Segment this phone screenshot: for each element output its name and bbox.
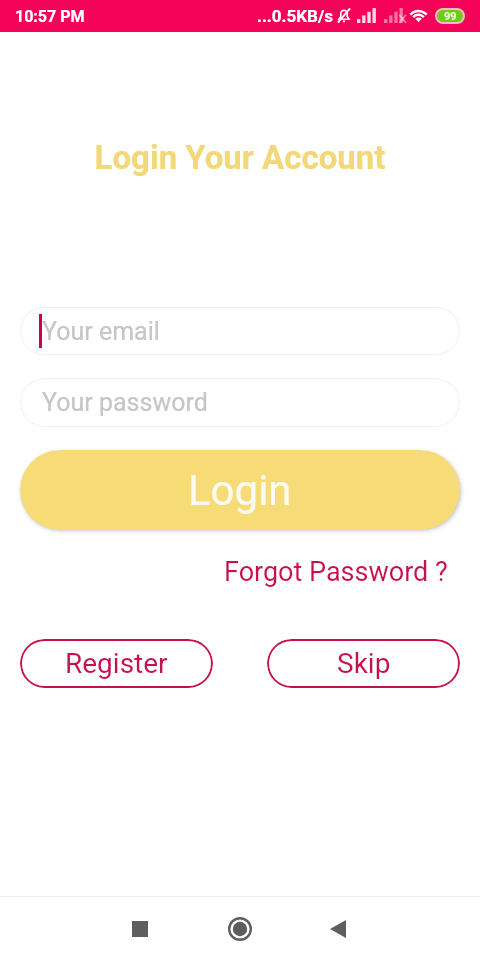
button[interactable]: Your email [20, 307, 460, 355]
staticText: Your email [42, 317, 160, 346]
staticText: Login [188, 466, 292, 515]
button[interactable]: Skip [267, 639, 460, 688]
staticText: 10:57 PM [15, 7, 85, 26]
button[interactable]: Login [20, 450, 460, 530]
staticText: Skip [337, 647, 391, 680]
staticText: Your password [42, 388, 208, 417]
button[interactable]: Your password [20, 378, 460, 427]
button[interactable]: Back [314, 905, 362, 953]
staticText: ...0.5KB/s [257, 6, 333, 26]
button[interactable]: Forgot Password ? [224, 556, 448, 588]
staticText: Forgot Password ? [224, 556, 448, 588]
staticText: Login Your Account [0, 138, 480, 177]
button[interactable]: Register [20, 639, 213, 688]
staticText: 99 [444, 10, 457, 23]
staticText: Register [65, 647, 168, 680]
button[interactable]: Home [216, 905, 264, 953]
button[interactable]: Recent apps [116, 905, 164, 953]
